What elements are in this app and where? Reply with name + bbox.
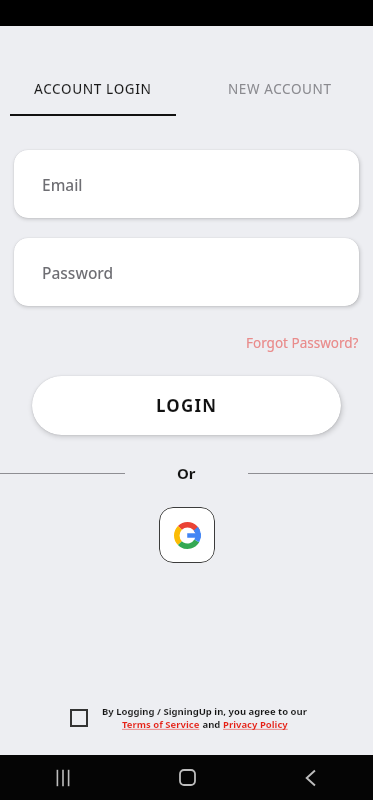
staticText: and (200, 718, 223, 731)
staticText: ACCOUNT LOGIN (34, 80, 152, 98)
button[interactable]: LOGIN (32, 376, 341, 435)
staticText: Privacy Policy (223, 718, 288, 731)
button[interactable]: Sign in with Google (159, 507, 215, 563)
staticText: Forgot Password? (246, 334, 359, 352)
staticText: By Logging / SigningUp in, you agree to … (102, 705, 307, 718)
staticText: LOGIN (156, 394, 218, 417)
staticText: Terms of Service (122, 718, 200, 731)
button[interactable]: Home (125, 755, 249, 800)
button[interactable]: Password (14, 238, 359, 306)
button[interactable]: Back (249, 755, 373, 800)
staticText: Email (42, 174, 83, 195)
button[interactable]: Forgot Password? (232, 330, 373, 356)
button[interactable]: NEW ACCOUNT (186, 80, 373, 116)
button[interactable]: Agree to terms checkbox (66, 705, 92, 731)
staticText: Or (177, 463, 196, 483)
staticText: Password (42, 262, 114, 283)
button[interactable]: Recent apps (0, 755, 125, 800)
button[interactable]: ACCOUNT LOGIN (0, 80, 186, 116)
staticText: NEW ACCOUNT (228, 80, 332, 98)
button[interactable]: Email (14, 150, 359, 218)
button[interactable]: Privacy Policy (223, 718, 288, 731)
button[interactable]: Terms of Service (122, 718, 200, 731)
